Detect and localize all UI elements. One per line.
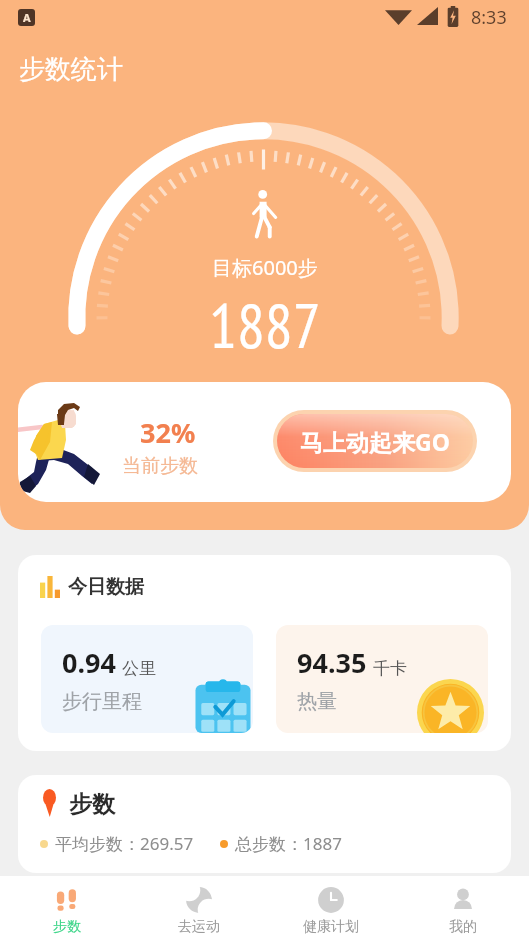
- button[interactable]: 94.35: [276, 625, 488, 733]
- button[interactable]: 0.94: [41, 625, 253, 733]
- staticText: 健康计划: [303, 918, 359, 936]
- staticText: 我的: [449, 918, 477, 936]
- staticText: 步数: [69, 790, 115, 819]
- button[interactable]: 32%: [18, 382, 511, 502]
- staticText: 马上动起来GO: [300, 426, 450, 457]
- staticText: A: [23, 10, 31, 25]
- staticText: 总步数：1887: [235, 832, 342, 855]
- staticText: 步行里程: [62, 689, 142, 714]
- staticText: 32%: [140, 414, 196, 451]
- staticText: 目标6000步: [212, 254, 318, 281]
- staticText: 今日数据: [68, 575, 144, 599]
- staticText: 当前步数: [122, 454, 198, 478]
- staticText: 步数: [53, 918, 81, 936]
- staticText: 步数统计: [19, 53, 123, 86]
- staticText: 0.94: [62, 644, 116, 681]
- staticText: 94.35: [297, 644, 367, 681]
- staticText: 去运动: [178, 918, 220, 936]
- button[interactable]: 马上动起来GO: [273, 410, 477, 472]
- staticText: 1887: [209, 285, 321, 365]
- button[interactable]: 步数: [0, 878, 133, 944]
- staticText: 千卡: [373, 658, 407, 679]
- staticText: 平均步数：269.57: [55, 832, 194, 855]
- button[interactable]: 健康计划: [265, 878, 397, 944]
- button[interactable]: 我的: [397, 878, 529, 944]
- staticText: 热量: [297, 689, 337, 714]
- button[interactable]: 去运动: [133, 878, 265, 944]
- staticText: 公里: [122, 658, 156, 679]
- staticText: 8:33: [471, 5, 507, 30]
